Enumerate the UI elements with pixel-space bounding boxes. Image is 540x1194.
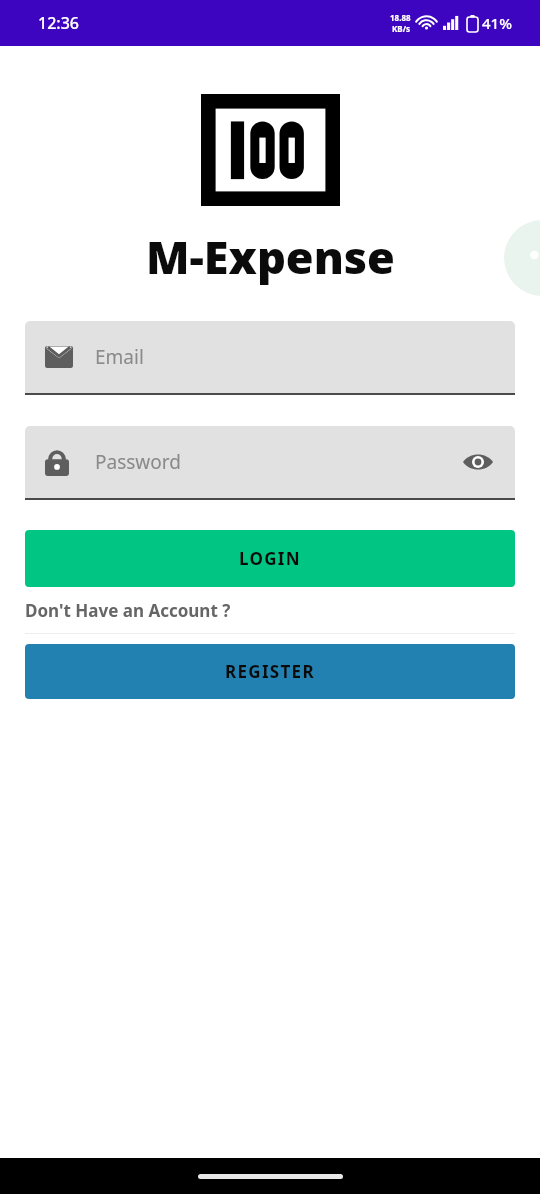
button[interactable]: Email: [25, 321, 515, 395]
staticText: LOGIN: [239, 547, 301, 570]
staticText: REGISTER: [225, 660, 315, 683]
button[interactable]: LOGIN: [25, 530, 515, 587]
staticText: Email: [95, 344, 144, 370]
staticText: M-Expense: [146, 226, 395, 287]
staticText: 18.88: [390, 12, 411, 23]
button[interactable]: Password: [25, 426, 515, 500]
staticText: 41%: [482, 13, 512, 33]
button[interactable]: Show password: [461, 445, 495, 479]
staticText: 12:36: [38, 12, 79, 34]
staticText: Password: [95, 449, 181, 475]
staticText: Don't Have an Account ?: [25, 599, 231, 622]
staticText: KB/s: [392, 23, 410, 34]
button[interactable]: REGISTER: [25, 644, 515, 699]
other: Password: [45, 448, 69, 476]
other: Email: [45, 346, 73, 368]
